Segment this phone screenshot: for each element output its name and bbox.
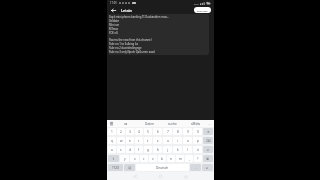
button[interactable]: Deutsch: [136, 164, 189, 171]
button[interactable]: h: [153, 146, 162, 153]
button[interactable]: va: [114, 122, 138, 126]
button[interactable]: e: [126, 137, 134, 144]
staticText: o: [187, 139, 189, 143]
button[interactable]: o: [183, 137, 192, 144]
staticText: MTmaz: [109, 27, 119, 31]
button[interactable]: s: [117, 146, 125, 153]
staticText: Rule no 3 only Nprdr QaGumm aasd: [109, 50, 155, 54]
staticText: ⌘: [206, 157, 210, 161]
staticText: Deutsch: [156, 166, 169, 170]
staticText: d: [129, 148, 131, 152]
staticText: 0: [197, 130, 199, 134]
button[interactable]: ☺: [124, 164, 135, 171]
button[interactable]: Back: [109, 6, 117, 14]
button[interactable]: ✕: [203, 128, 213, 135]
button[interactable]: 4: [135, 128, 143, 135]
staticText: ☺: [128, 166, 132, 170]
button[interactable]: i: [173, 137, 182, 144]
button[interactable]: r: [135, 137, 143, 144]
staticText: Rule no 1 to Sulbing ka: [109, 42, 138, 46]
button[interactable]: Home: [157, 173, 164, 180]
button[interactable]: Beitreten: [194, 7, 211, 13]
staticText: 17:05: [110, 1, 117, 5]
staticText: c: [143, 157, 145, 161]
button[interactable]: k: [173, 146, 182, 153]
button[interactable]: x: [130, 155, 139, 162]
staticText: Daten: [145, 122, 155, 126]
staticText: FDE eG: [109, 31, 119, 35]
button[interactable]: l: [183, 146, 192, 153]
staticText: .: [195, 166, 196, 170]
button[interactable]: 3: [126, 128, 134, 135]
button[interactable]: suche: [161, 122, 184, 126]
button[interactable]: ⌘: [203, 155, 213, 162]
button[interactable]: ?: [194, 155, 202, 162]
button[interactable]: q: [108, 137, 116, 144]
button[interactable]: j: [163, 146, 172, 153]
button[interactable]: t: [144, 137, 152, 144]
button[interactable]: w: [117, 137, 125, 144]
button[interactable]: Back: [132, 173, 139, 180]
button[interactable]: a: [108, 146, 116, 153]
staticText: 1: [111, 130, 113, 134]
staticText: suche: [168, 122, 177, 126]
button[interactable]: v: [149, 155, 157, 162]
staticText: m: [179, 157, 182, 161]
button[interactable]: Recents: [182, 173, 189, 180]
button[interactable]: n: [167, 155, 175, 162]
staticText: ö: [197, 148, 199, 152]
button[interactable]: ↵: [202, 164, 213, 171]
button[interactable]: More: [207, 121, 212, 126]
button[interactable]: 9: [183, 128, 192, 135]
button[interactable]: 8: [173, 128, 182, 135]
staticText: Mini car: [109, 23, 120, 27]
button[interactable]: ,: [185, 155, 193, 162]
button[interactable]: p: [193, 137, 202, 144]
staticText: a: [111, 148, 113, 152]
staticText: ↵: [207, 148, 210, 152]
staticText: f: [138, 148, 140, 152]
button[interactable]: sMdw: [184, 122, 207, 126]
button[interactable]: z: [153, 137, 162, 144]
staticText: Rule no 2 dusridedingnge: [109, 46, 142, 50]
staticText: t: [147, 139, 149, 143]
button[interactable]: f: [135, 146, 143, 153]
button[interactable]: m: [176, 155, 184, 162]
button[interactable]: ⇧: [108, 155, 119, 162]
button[interactable]: b: [158, 155, 166, 162]
button[interactable]: 5: [144, 128, 152, 135]
button[interactable]: 6: [153, 128, 162, 135]
button[interactable]: g: [144, 146, 152, 153]
staticText: g: [147, 148, 149, 152]
staticText: ?123: [112, 166, 119, 170]
staticText: Validate: [109, 19, 120, 23]
staticText: ⇧: [112, 157, 115, 161]
staticText: b: [161, 157, 163, 161]
button[interactable]: 1: [108, 128, 116, 135]
staticText: ✕: [207, 130, 210, 134]
staticText: Beitreten: [197, 9, 208, 12]
staticText: e: [129, 139, 131, 143]
button[interactable]: 0: [193, 128, 202, 135]
button[interactable]: ?123: [108, 164, 123, 171]
button[interactable]: 7: [163, 128, 172, 135]
button[interactable]: Daten: [138, 122, 161, 126]
staticText: 7: [167, 130, 169, 134]
button[interactable]: 2: [117, 128, 125, 135]
button[interactable]: ö: [193, 146, 202, 153]
button[interactable]: u: [163, 137, 172, 144]
staticText: p: [197, 139, 199, 143]
staticText: Letsin: [121, 8, 132, 13]
button[interactable]: ↵: [203, 146, 213, 153]
staticText: r: [138, 139, 140, 143]
staticText: q: [111, 139, 113, 143]
staticText: n: [170, 157, 172, 161]
button[interactable]: ⌫: [203, 137, 213, 144]
staticText: j: [167, 148, 168, 152]
staticText: 9: [187, 130, 189, 134]
button[interactable]: d: [126, 146, 134, 153]
button[interactable]: Keyboard menu: [109, 121, 114, 126]
button[interactable]: c: [140, 155, 148, 162]
button[interactable]: y: [120, 155, 129, 162]
